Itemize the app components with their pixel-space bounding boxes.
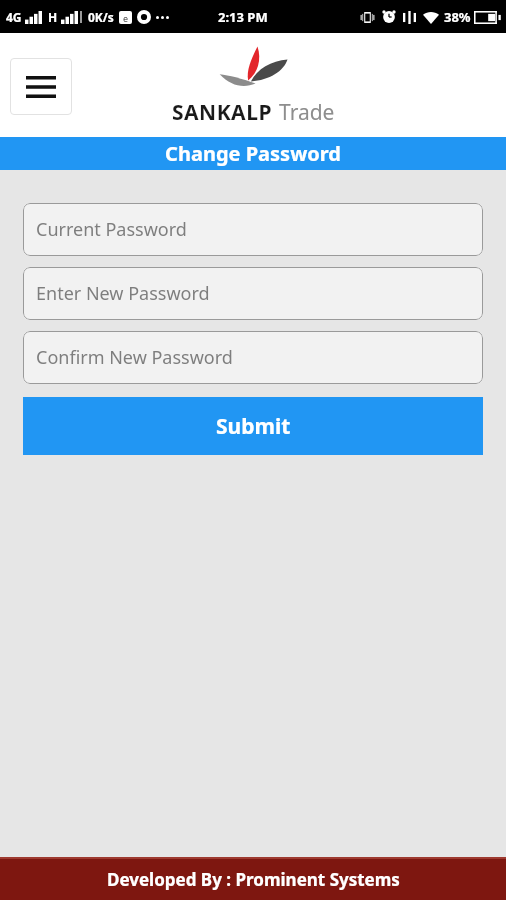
staticText: Trade xyxy=(279,98,335,127)
button[interactable]: Submit xyxy=(23,397,483,455)
staticText: Developed By : Prominent Systems xyxy=(107,868,400,891)
button[interactable]: Open navigation menu xyxy=(10,58,72,115)
staticText: Enter New Password xyxy=(36,281,210,306)
staticText: Change Password xyxy=(165,140,341,167)
staticText: e xyxy=(123,12,129,24)
staticText: 4G xyxy=(6,9,22,25)
staticText: 2:13 PM xyxy=(218,8,268,26)
button[interactable]: Current Password xyxy=(23,203,483,256)
staticText: SANKALP xyxy=(172,98,272,127)
staticText: 38% xyxy=(444,8,471,26)
button[interactable]: Confirm New Password xyxy=(23,331,483,384)
staticText: Confirm New Password xyxy=(36,345,233,370)
staticText: 0K/s xyxy=(88,9,114,25)
staticText: Current Password xyxy=(36,217,187,242)
button[interactable]: Enter New Password xyxy=(23,267,483,320)
staticText: Submit xyxy=(216,412,291,441)
staticText: H xyxy=(48,9,58,25)
